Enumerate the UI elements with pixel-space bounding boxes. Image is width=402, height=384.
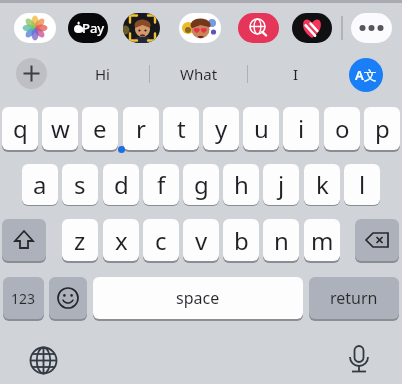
button[interactable]: q bbox=[2, 107, 38, 150]
staticText: m bbox=[311, 224, 334, 257]
button[interactable]: w bbox=[42, 107, 78, 150]
button[interactable]: k bbox=[304, 164, 340, 205]
staticText: t bbox=[177, 112, 186, 145]
staticText: w bbox=[51, 112, 70, 145]
staticText: c bbox=[155, 224, 167, 257]
button[interactable]: u bbox=[243, 107, 279, 150]
button[interactable]: A文 bbox=[349, 58, 383, 92]
button[interactable] bbox=[2, 219, 46, 261]
button[interactable] bbox=[238, 13, 279, 43]
button[interactable]: h bbox=[223, 164, 259, 205]
staticText: n bbox=[274, 224, 289, 257]
button[interactable]: t bbox=[163, 107, 199, 150]
button[interactable]: return bbox=[309, 277, 399, 319]
staticText: I bbox=[293, 64, 299, 84]
button[interactable]: 123 bbox=[3, 277, 44, 319]
staticText: a bbox=[33, 168, 47, 201]
button[interactable] bbox=[16, 58, 47, 89]
staticText: k bbox=[316, 168, 329, 201]
button[interactable]: r bbox=[123, 107, 159, 150]
staticText: u bbox=[254, 112, 269, 145]
staticText: space bbox=[176, 287, 220, 309]
staticText: Pay bbox=[82, 19, 105, 37]
button[interactable]: y bbox=[203, 107, 239, 150]
staticText: r bbox=[136, 112, 146, 145]
button[interactable]: n bbox=[263, 219, 299, 261]
button[interactable]: d bbox=[103, 164, 139, 205]
staticText: s bbox=[74, 168, 86, 201]
staticText: l bbox=[359, 168, 366, 201]
button[interactable]: a bbox=[22, 164, 58, 205]
staticText: b bbox=[234, 224, 249, 257]
button[interactable]: e bbox=[82, 107, 118, 150]
staticText: o bbox=[335, 112, 350, 145]
button[interactable]: o bbox=[324, 107, 360, 150]
staticText: A文 bbox=[355, 66, 377, 84]
button[interactable]: l bbox=[344, 164, 380, 205]
button[interactable] bbox=[123, 13, 160, 43]
button[interactable]: b bbox=[223, 219, 259, 261]
staticText: q bbox=[13, 112, 28, 145]
button[interactable]: g bbox=[183, 164, 219, 205]
button[interactable] bbox=[29, 346, 58, 375]
staticText: What bbox=[180, 64, 218, 84]
staticText: v bbox=[195, 224, 208, 257]
button[interactable]: v bbox=[183, 219, 219, 261]
button[interactable]: m bbox=[304, 219, 340, 261]
staticText: h bbox=[234, 168, 249, 201]
button[interactable]: i bbox=[283, 107, 319, 150]
button[interactable]: j bbox=[263, 164, 299, 205]
button[interactable] bbox=[14, 13, 56, 43]
staticText: z bbox=[74, 224, 86, 257]
staticText: j bbox=[278, 168, 285, 201]
button[interactable]: space bbox=[93, 277, 303, 319]
button[interactable]: Hi bbox=[62, 60, 142, 88]
staticText: e bbox=[93, 112, 107, 145]
button[interactable]: What bbox=[159, 60, 239, 88]
button[interactable] bbox=[351, 13, 392, 43]
button[interactable] bbox=[345, 344, 373, 376]
button[interactable] bbox=[49, 277, 87, 319]
button[interactable]: I bbox=[256, 60, 336, 88]
button[interactable] bbox=[355, 219, 399, 261]
button[interactable]: Pay bbox=[68, 13, 108, 43]
staticText: g bbox=[194, 168, 209, 201]
staticText: d bbox=[114, 168, 129, 201]
button[interactable]: f bbox=[143, 164, 179, 205]
button[interactable]: p bbox=[364, 107, 400, 150]
staticText: y bbox=[215, 112, 228, 145]
staticText: 123 bbox=[11, 289, 36, 308]
staticText: i bbox=[298, 112, 305, 145]
button[interactable]: z bbox=[62, 219, 98, 261]
staticText: p bbox=[375, 112, 390, 145]
button[interactable]: s bbox=[62, 164, 98, 205]
staticText: Hi bbox=[95, 64, 110, 84]
button[interactable] bbox=[179, 13, 221, 43]
staticText: return bbox=[330, 287, 378, 309]
button[interactable] bbox=[292, 13, 332, 43]
button[interactable]: c bbox=[143, 219, 179, 261]
staticText: f bbox=[157, 168, 166, 201]
staticText: x bbox=[115, 224, 128, 257]
button[interactable]: x bbox=[103, 219, 139, 261]
